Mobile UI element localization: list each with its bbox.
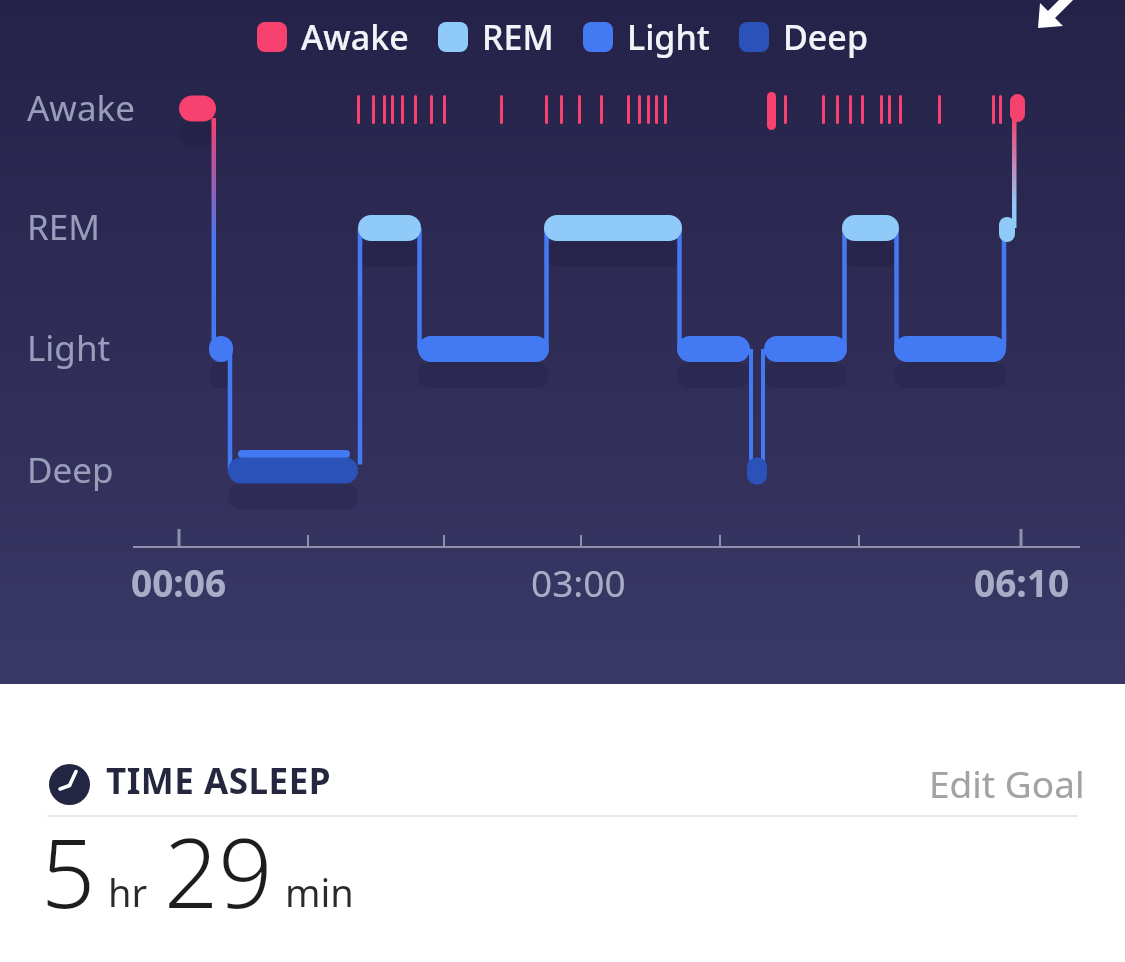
button[interactable]: REM [438,14,554,60]
staticText: Awake [27,84,135,130]
button[interactable]: Awake [257,14,409,60]
staticText: 00:06 [131,557,227,607]
staticText: Light [27,324,111,370]
button[interactable]: TIME ASLEEP [0,684,1125,819]
staticText: REM [27,203,100,249]
staticText: TIME ASLEEP [106,757,332,805]
staticText: Light [627,14,710,60]
button[interactable] [1030,0,1125,45]
staticText: REM [482,14,554,60]
staticText: 03:00 [531,557,626,607]
staticText: 5 [41,806,96,935]
button[interactable]: Deep [739,14,868,60]
staticText: Deep [27,446,114,492]
staticText: Deep [783,14,868,60]
button[interactable]: Light [583,14,710,60]
staticText: 29 [164,806,273,935]
staticText: 06:10 [974,557,1070,607]
staticText: Edit Goal [929,758,1085,808]
staticText: Awake [301,14,409,60]
staticText: min [285,866,354,918]
staticText: hr [108,866,148,918]
